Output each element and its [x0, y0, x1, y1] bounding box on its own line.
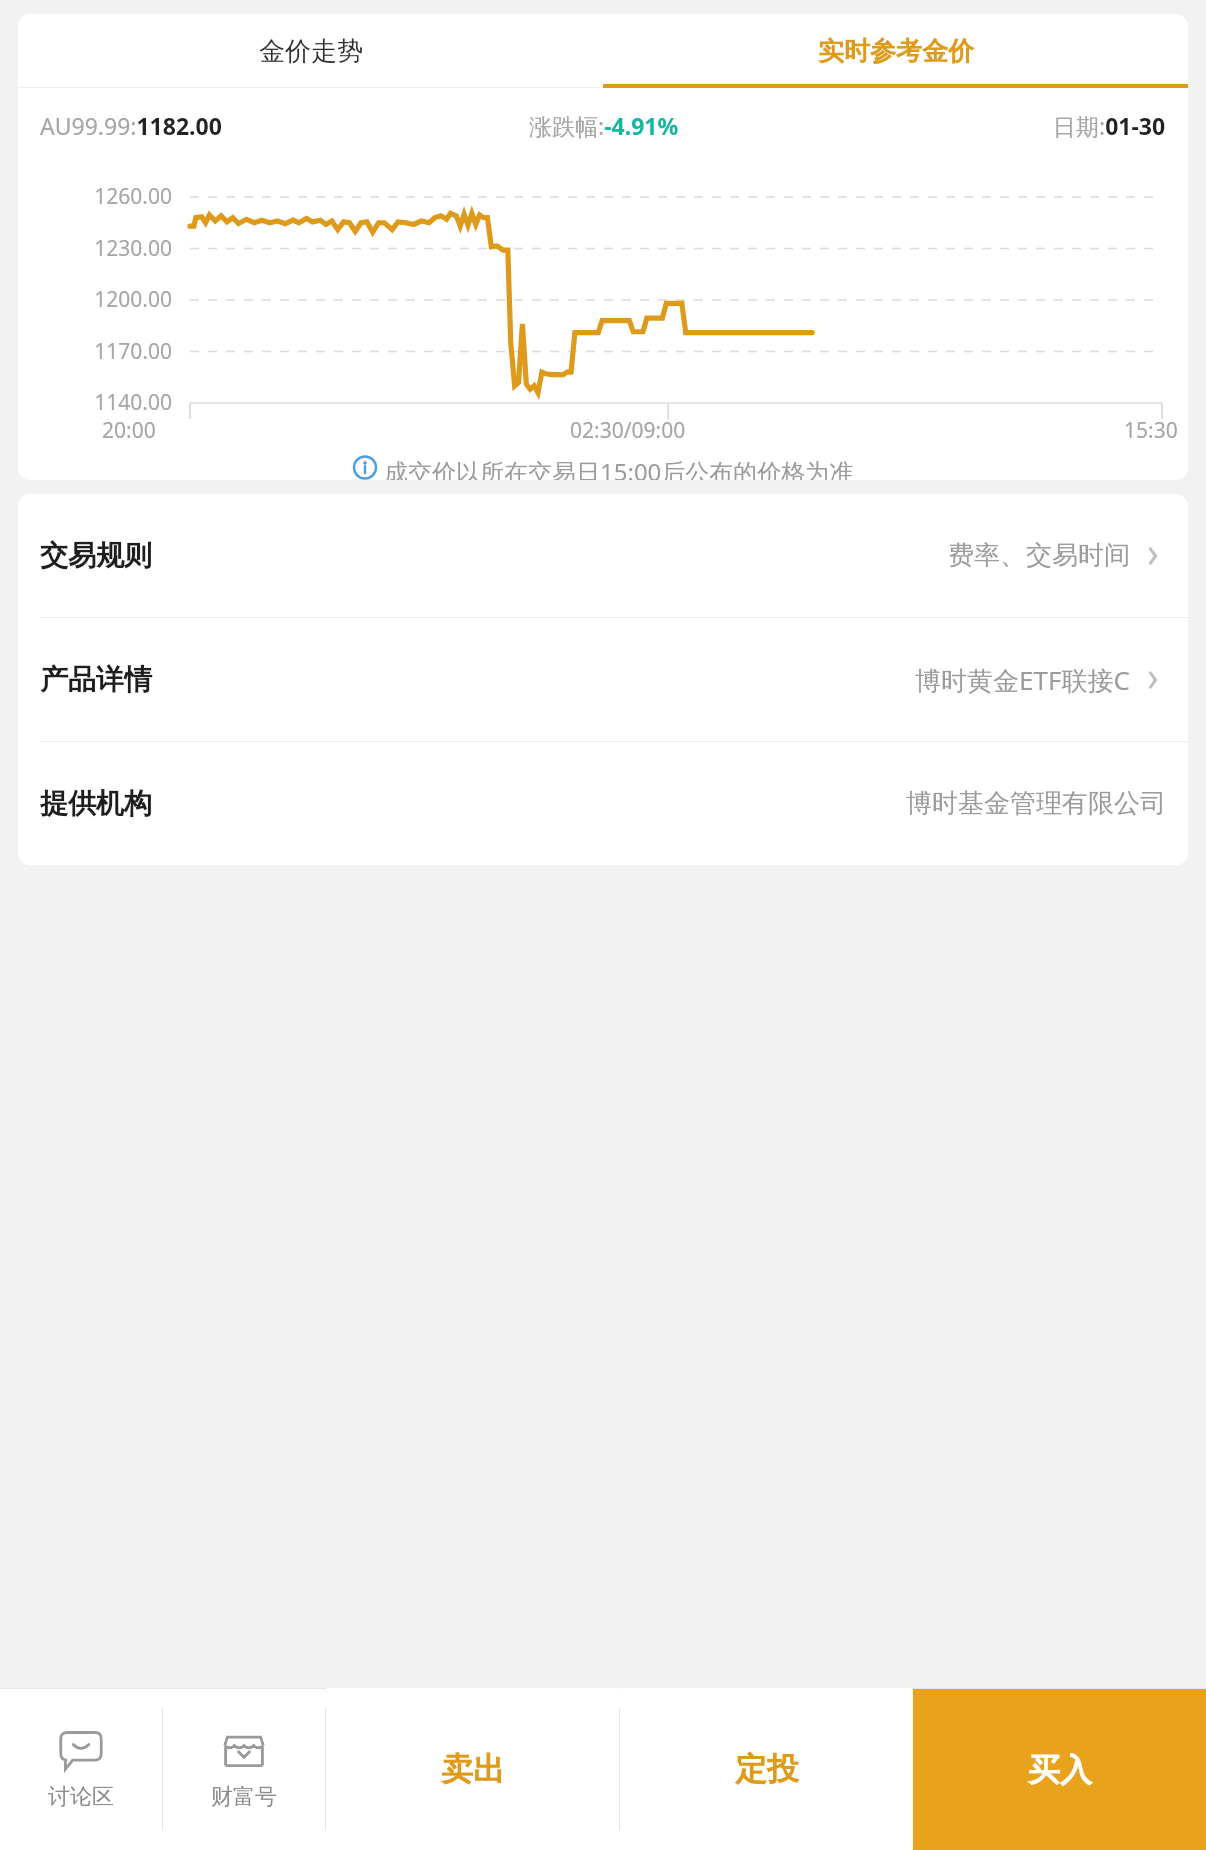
staticText: 卖出 — [441, 1749, 505, 1789]
button[interactable]: 定投 — [620, 1688, 913, 1850]
staticText: 15:30 — [1124, 416, 1178, 445]
staticText: 金价走势 — [259, 35, 363, 68]
staticText: 涨跌幅:-4.91% — [529, 110, 679, 141]
button[interactable]: 讨论区 — [0, 1688, 162, 1850]
staticText: 1260.00 — [22, 182, 172, 211]
staticText: 日期:01-30 — [1053, 110, 1166, 141]
staticText: 1200.00 — [22, 285, 172, 314]
button[interactable]: 卖出 — [326, 1688, 619, 1850]
staticText: 财富号 — [211, 1783, 277, 1811]
staticText: 博时黄金ETF联接C — [915, 662, 1130, 698]
staticText: 提供机构 — [40, 786, 152, 821]
button[interactable]: 交易规则 — [18, 494, 1188, 618]
button[interactable]: 实时参考金价 — [603, 14, 1188, 88]
staticText: 产品详情 — [40, 662, 152, 697]
staticText: AU99.99:1182.00 — [40, 110, 222, 141]
staticText: 费率、交易时间 — [948, 539, 1130, 572]
other: 讨论区 — [58, 1727, 104, 1773]
other: 财富号 — [221, 1727, 267, 1773]
staticText: 实时参考金价 — [818, 35, 974, 68]
button[interactable]: 提供机构 — [18, 742, 1188, 865]
staticText: 02:30/09:00 — [570, 416, 686, 445]
staticText: 成交价以所在交易日15:00后公布的价格为准 — [384, 455, 854, 480]
staticText: 20:00 — [102, 416, 156, 445]
staticText: 1230.00 — [22, 234, 172, 263]
staticText: 定投 — [735, 1749, 799, 1789]
staticText: 1170.00 — [22, 337, 172, 366]
button[interactable]: 金价走势 — [18, 14, 603, 88]
staticText: 博时基金管理有限公司 — [906, 787, 1166, 820]
staticText: 1140.00 — [22, 388, 172, 417]
button[interactable]: 买入 — [913, 1689, 1206, 1850]
staticText: 讨论区 — [48, 1783, 114, 1811]
staticText: 买入 — [1028, 1750, 1092, 1790]
staticText: 交易规则 — [40, 538, 152, 573]
button[interactable]: 财富号 — [163, 1688, 325, 1850]
button[interactable]: 产品详情 — [18, 618, 1188, 742]
